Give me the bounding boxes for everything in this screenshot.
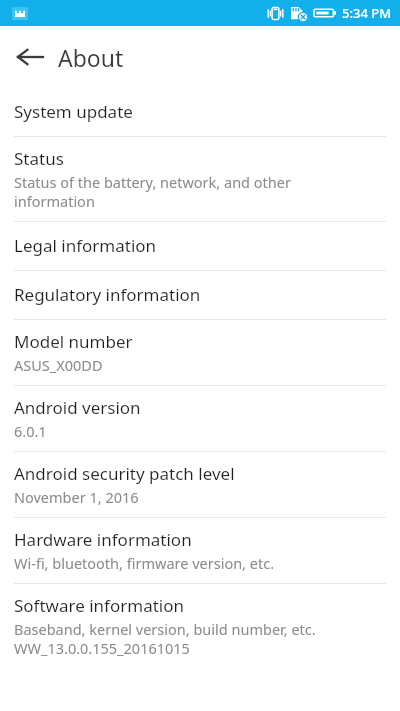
staticText: November 1, 2016 [14,487,139,507]
staticText: Hardware information [14,528,192,551]
staticText: Model number [14,330,133,353]
button[interactable]: Model number [0,320,400,385]
button[interactable]: Software information [0,584,400,668]
staticText: ASUS_X00DD [14,355,103,375]
staticText: Baseband, kernel version, build number, … [14,619,316,658]
staticText: Legal information [14,234,157,257]
staticText: System update [14,100,133,123]
button[interactable]: Hardware information [0,518,400,583]
staticText: Software information [14,594,184,617]
staticText: 5:34 PM [342,4,392,22]
button[interactable]: Regulatory information [0,271,400,319]
staticText: Wi-fi, bluetooth, firmware version, etc. [14,553,275,573]
staticText: 6.0.1 [14,421,47,441]
staticText: Regulatory information [14,283,201,306]
staticText: Android security patch level [14,462,235,485]
staticText: About [58,42,124,73]
staticText: Android version [14,396,141,419]
staticText: Status [14,147,64,170]
button[interactable]: Legal information [0,222,400,270]
button[interactable]: Navigate up [8,35,52,79]
staticText: Status of the battery, network, and othe… [14,172,291,211]
button[interactable]: System update [0,88,400,136]
button[interactable]: Android security patch level [0,452,400,517]
button[interactable]: Android version [0,386,400,451]
button[interactable]: Status [0,137,400,221]
